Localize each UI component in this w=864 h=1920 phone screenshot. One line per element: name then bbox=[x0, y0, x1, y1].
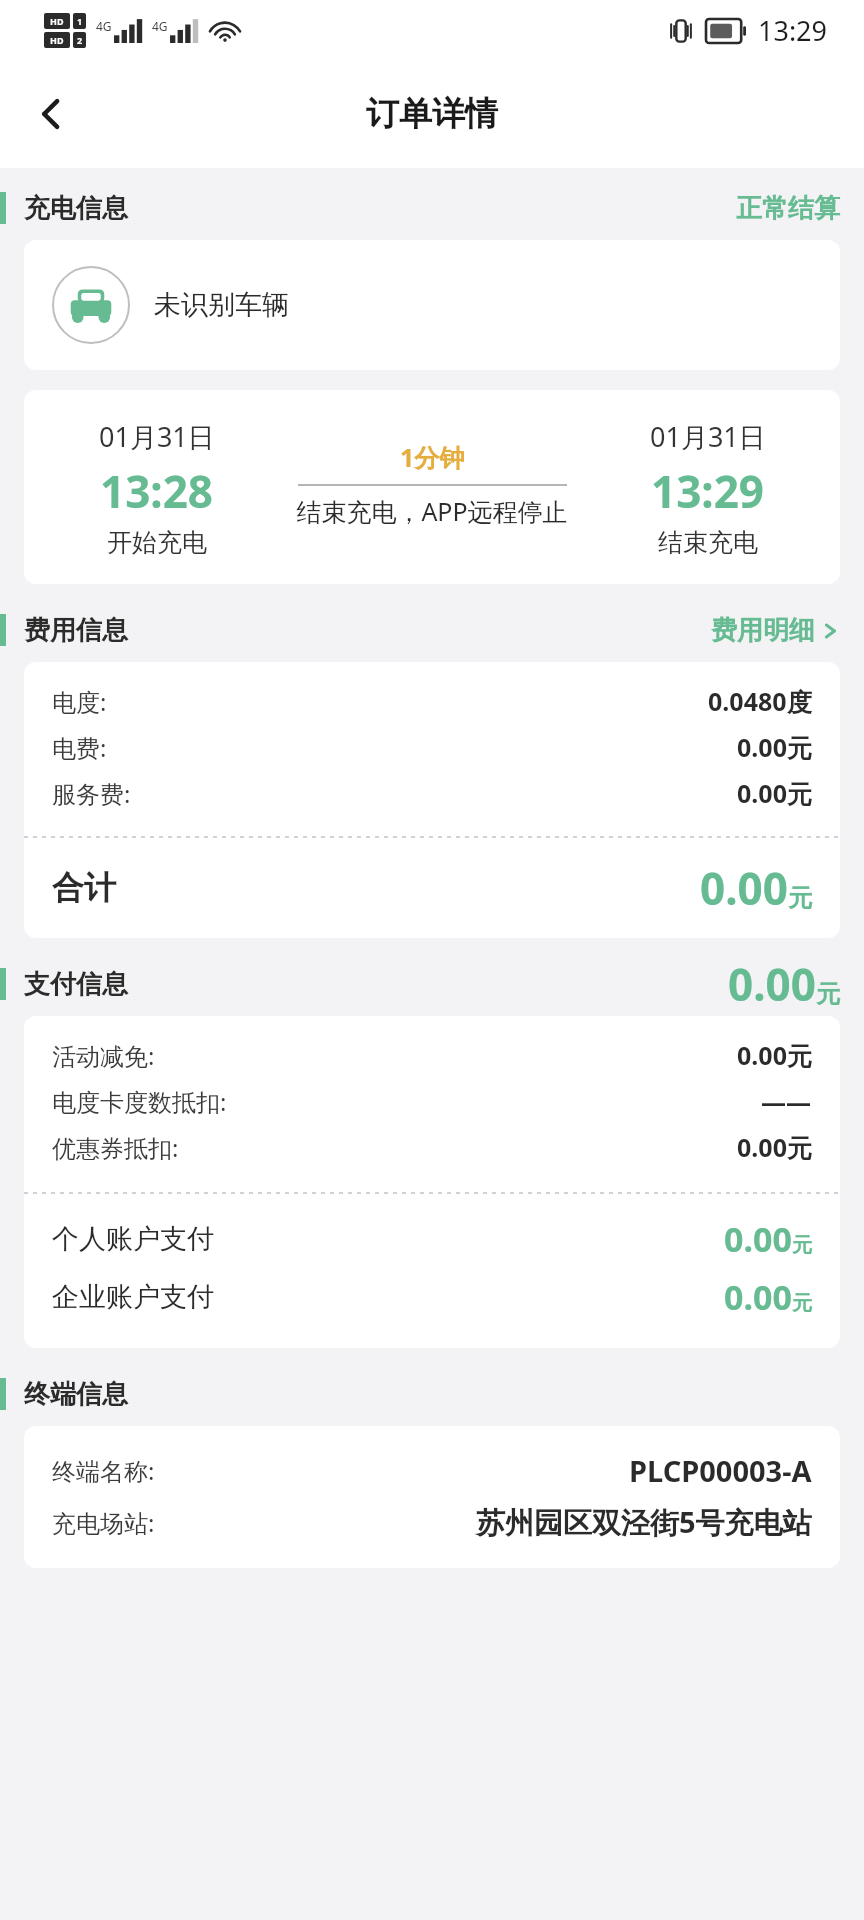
staticText: 4G bbox=[96, 18, 112, 34]
staticText: 元 bbox=[787, 779, 812, 810]
staticText: 0.00 bbox=[724, 1216, 792, 1262]
staticText: 0.00 bbox=[724, 1274, 792, 1320]
staticText: 0.00 bbox=[737, 1130, 787, 1164]
staticText: 0.00 bbox=[737, 1038, 787, 1072]
staticText: 服务费: bbox=[52, 777, 131, 810]
staticText: 终端名称: bbox=[52, 1454, 155, 1487]
staticText: 0.00 bbox=[700, 858, 788, 918]
staticText: 开始充电 bbox=[107, 527, 207, 558]
staticText: 正常结算 bbox=[736, 192, 840, 225]
staticText: 电度: bbox=[52, 685, 107, 718]
staticText: 终端信息 bbox=[24, 1378, 128, 1411]
staticText: 元 bbox=[788, 883, 812, 913]
staticText: HD bbox=[50, 34, 64, 46]
staticText: 企业账户支付 bbox=[52, 1280, 214, 1314]
staticText: 结束充电 bbox=[658, 527, 758, 558]
staticText: 元 bbox=[792, 1233, 812, 1258]
button[interactable]: 费用明细 bbox=[711, 614, 840, 647]
staticText: 充电信息 bbox=[24, 192, 128, 225]
staticText: 未识别车辆 bbox=[154, 288, 289, 322]
staticText: 合计 bbox=[52, 868, 116, 908]
staticText: 结束充电，APP远程停止 bbox=[289, 494, 575, 528]
staticText: 费用明细 bbox=[711, 614, 815, 647]
staticText: 0.00 bbox=[737, 730, 787, 764]
staticText: 费用信息 bbox=[24, 614, 128, 647]
staticText: PLCP00003-A bbox=[629, 1451, 812, 1490]
staticText: 0.00 bbox=[737, 776, 787, 810]
staticText: 元 bbox=[792, 1291, 812, 1316]
staticText: 个人账户支付 bbox=[52, 1222, 214, 1256]
staticText: 0.0480 bbox=[708, 684, 787, 718]
staticText: 13:29 bbox=[758, 12, 828, 49]
staticText: 1 bbox=[77, 15, 83, 27]
staticText: 支付信息 bbox=[24, 968, 128, 1001]
staticText: 01月31日 bbox=[99, 418, 215, 455]
staticText: 01月31日 bbox=[650, 418, 766, 455]
staticText: 优惠券抵扣: bbox=[52, 1131, 179, 1164]
staticText: 0.00 bbox=[728, 954, 816, 1014]
staticText: 元 bbox=[787, 733, 812, 764]
button[interactable]: 未识别车辆 bbox=[52, 240, 840, 370]
staticText: 苏州园区双泾街5号充电站 bbox=[476, 1502, 812, 1542]
staticText: 电度卡度数抵扣: bbox=[52, 1085, 227, 1118]
staticText: 2 bbox=[77, 34, 83, 46]
staticText: 度 bbox=[787, 687, 812, 718]
staticText: 13:29 bbox=[651, 461, 765, 521]
staticText: 元 bbox=[816, 979, 840, 1009]
staticText: 4G bbox=[152, 18, 168, 34]
other: 费用明细 bbox=[820, 621, 840, 641]
staticText: 1分钟 bbox=[400, 440, 465, 474]
staticText: 充电场站: bbox=[52, 1506, 155, 1539]
staticText: 活动减免: bbox=[52, 1039, 155, 1072]
button[interactable]: Back bbox=[20, 83, 82, 145]
staticText: —— bbox=[761, 1084, 812, 1118]
staticText: 13:28 bbox=[100, 461, 214, 521]
staticText: 订单详情 bbox=[366, 93, 498, 135]
staticText: HD bbox=[50, 15, 64, 27]
staticText: 元 bbox=[787, 1041, 812, 1072]
staticText: 元 bbox=[787, 1133, 812, 1164]
staticText: 电费: bbox=[52, 731, 107, 764]
